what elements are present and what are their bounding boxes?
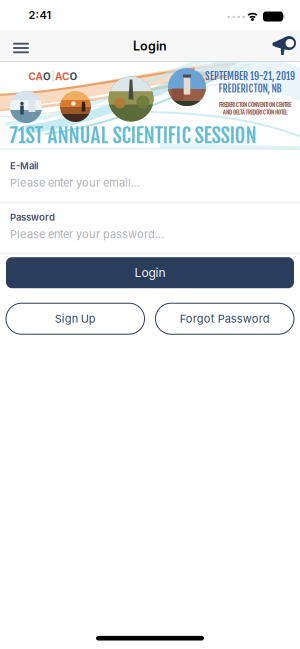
staticText: Sign Up	[55, 312, 96, 325]
staticText: Password	[10, 212, 55, 223]
staticText: AND DELTA FREDERICTON HOTEL	[223, 108, 287, 116]
staticText: Please enter your password...	[10, 228, 164, 241]
staticText: E-Mail	[10, 160, 38, 171]
button[interactable]: Please enter your email...	[0, 176, 300, 203]
button[interactable]: Forgot Password	[155, 303, 294, 334]
staticText: Please enter your email...	[10, 176, 140, 189]
staticText: Login	[133, 38, 167, 53]
staticText: 71ST ANNUAL SCIENTIFIC SESSION	[9, 123, 256, 148]
button[interactable]: Sign Up	[6, 303, 144, 334]
button[interactable]: Please enter your password...	[0, 228, 300, 254]
staticText: |	[51, 71, 54, 82]
staticText: FREDERICTON, NB	[218, 82, 281, 95]
staticText: Forgot Password	[180, 312, 270, 325]
button[interactable]: Login	[6, 257, 294, 288]
staticText: O	[69, 70, 77, 83]
staticText: O	[43, 70, 51, 83]
staticText: CA	[28, 70, 42, 83]
button[interactable]: Announcements	[272, 34, 300, 58]
button[interactable]: Menu	[0, 41, 29, 51]
staticText: Login	[134, 265, 165, 280]
staticText: 2:41	[28, 8, 51, 22]
staticText: SEPTEMBER 19-21, 2019	[205, 70, 295, 82]
staticText: AC	[55, 70, 69, 83]
staticText: FREDERICTON CONVENTION CENTRE	[219, 101, 291, 108]
